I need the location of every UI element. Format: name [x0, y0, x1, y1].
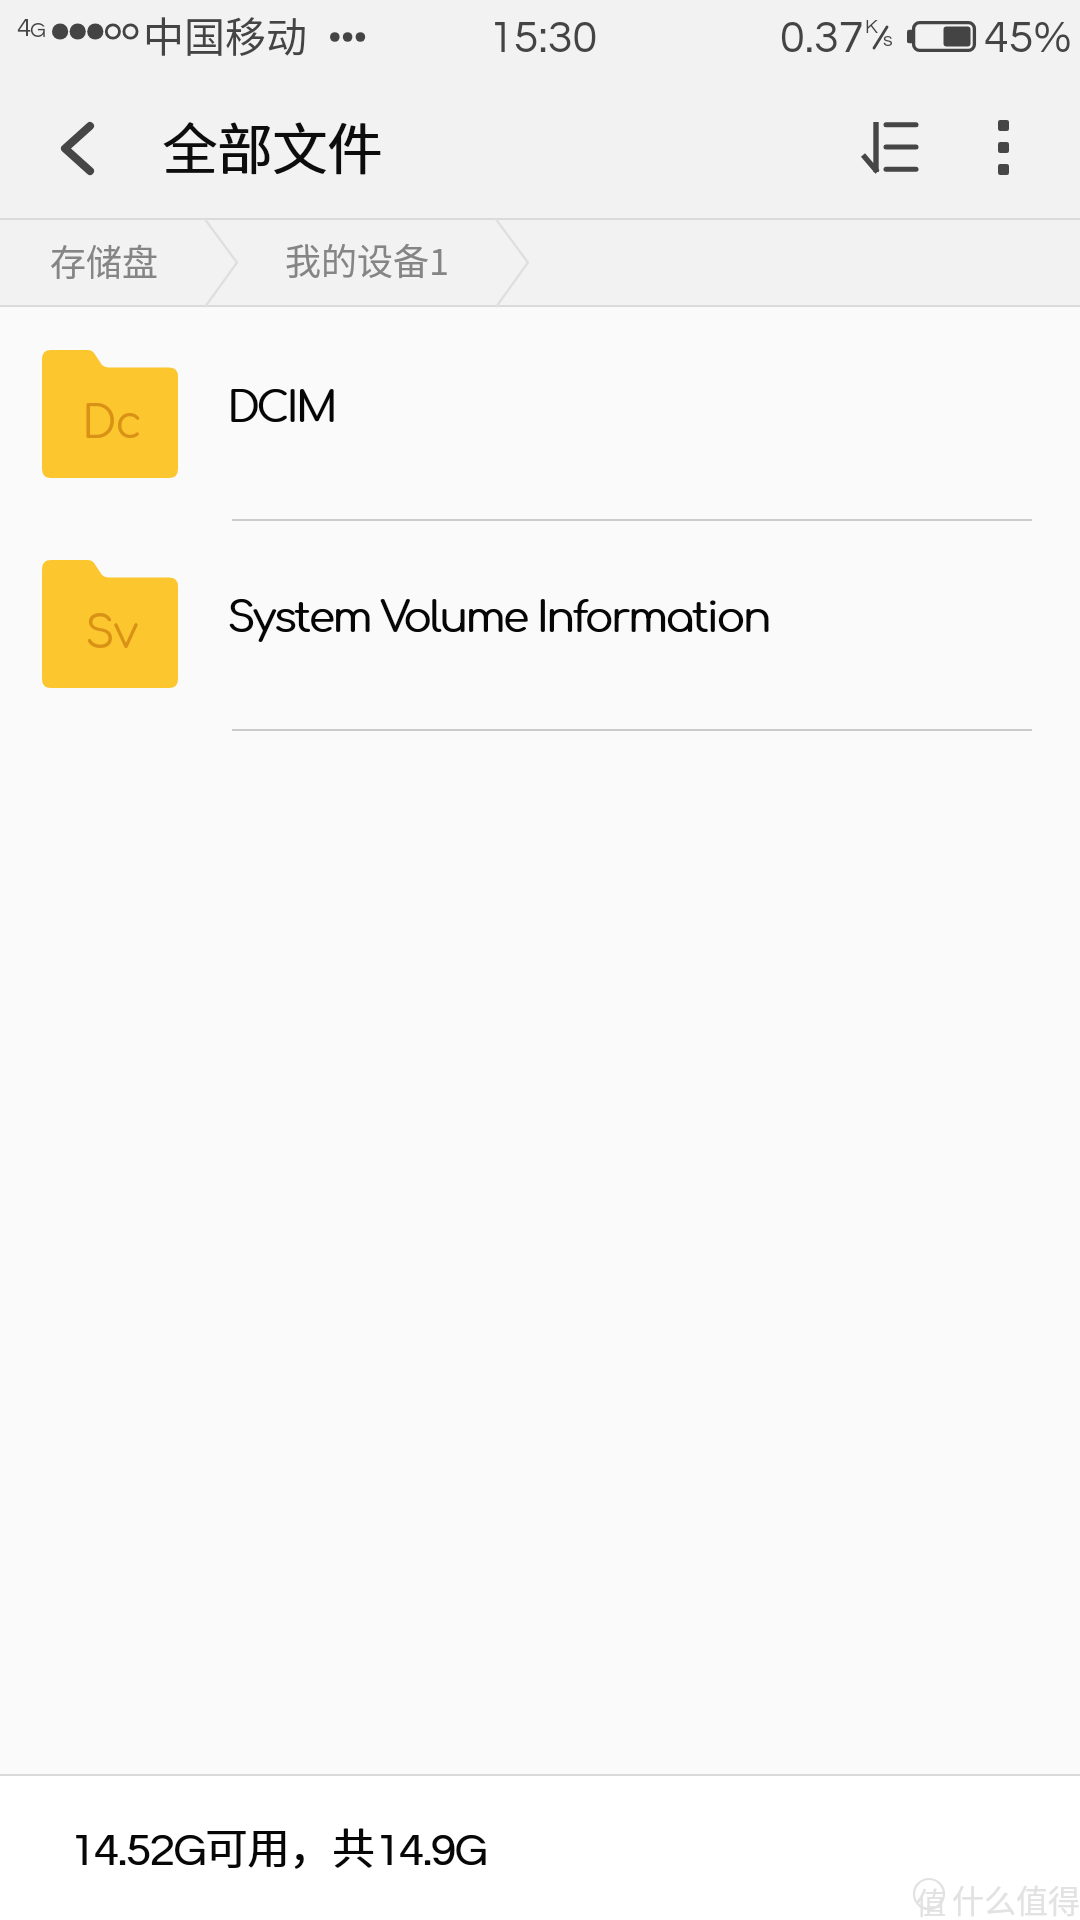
- button[interactable]: 存储盘: [0, 220, 212, 307]
- staticText: 可用，: [205, 1815, 332, 1876]
- button[interactable]: Sort: [829, 80, 947, 218]
- staticText: 4: [17, 15, 32, 42]
- staticText: 共: [332, 1815, 375, 1876]
- staticText: 值: [916, 1879, 946, 1920]
- button[interactable]: Sv: [0, 521, 1080, 729]
- staticText: 中国移动: [143, 4, 307, 63]
- staticText: DCIM: [228, 385, 336, 432]
- staticText: 0.37: [780, 15, 864, 61]
- staticText: 15:30: [489, 15, 598, 61]
- button[interactable]: Back: [20, 80, 138, 218]
- button[interactable]: 我的设备1: [237, 219, 489, 306]
- staticText: 什么值得买: [952, 1876, 1080, 1920]
- staticText: s: [883, 30, 893, 51]
- staticText: System Volume Information: [227, 595, 769, 642]
- staticText: 可用，: [206, 1815, 333, 1876]
- staticText: 14.52G: [70, 1828, 205, 1874]
- staticText: 14.9G: [375, 1828, 486, 1874]
- staticText: 全部文件: [163, 105, 384, 185]
- staticText: Dc: [82, 398, 141, 448]
- staticText: G: [30, 19, 46, 42]
- staticText: 全部文件: [162, 105, 383, 185]
- button[interactable]: More options: [947, 80, 1059, 218]
- button[interactable]: Dc: [0, 307, 1080, 519]
- staticText: 共: [333, 1815, 376, 1876]
- staticText: 14.9G: [376, 1828, 487, 1874]
- staticText: 14.52G: [71, 1828, 206, 1874]
- staticText: System Volume Information: [228, 595, 770, 642]
- staticText: 45%: [984, 15, 1072, 61]
- staticText: Sv: [85, 608, 137, 658]
- staticText: K: [865, 17, 878, 38]
- staticText: DCIM: [227, 385, 335, 432]
- staticText: 我的设备1: [285, 233, 449, 285]
- staticText: 存储盘: [50, 234, 159, 286]
